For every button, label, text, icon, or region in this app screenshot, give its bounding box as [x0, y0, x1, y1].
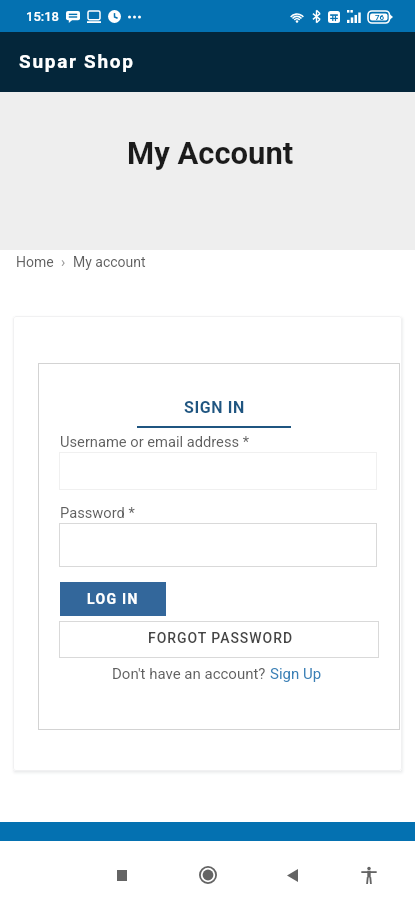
button[interactable]: LOG IN: [60, 582, 166, 616]
button[interactable]: Sign Up: [270, 665, 322, 683]
button[interactable]: [59, 452, 377, 490]
staticText: Password *: [60, 504, 135, 521]
staticText: ›: [54, 254, 73, 270]
staticText: Home: [16, 254, 54, 270]
staticText: Username or email address *: [60, 433, 250, 450]
button[interactable]: FORGOT PASSWORD: [59, 621, 379, 658]
button[interactable]: Back: [270, 853, 314, 897]
staticText: 76: [375, 13, 385, 22]
staticText: 15:18: [26, 9, 59, 24]
button[interactable]: Accessibility: [347, 853, 391, 897]
staticText: FORGOT PASSWORD: [148, 630, 294, 646]
staticText: SIGN IN: [184, 398, 245, 417]
staticText: LOG IN: [87, 591, 139, 607]
staticText: Don't have an account?: [112, 665, 270, 683]
button[interactable]: SIGN IN: [137, 396, 291, 418]
button[interactable]: [59, 523, 377, 567]
staticText: My account: [73, 254, 146, 270]
button[interactable]: Recent apps: [100, 853, 144, 897]
button[interactable]: Home: [186, 853, 230, 897]
staticText: My Account: [127, 135, 294, 171]
staticText: Supar Shop: [19, 50, 135, 72]
